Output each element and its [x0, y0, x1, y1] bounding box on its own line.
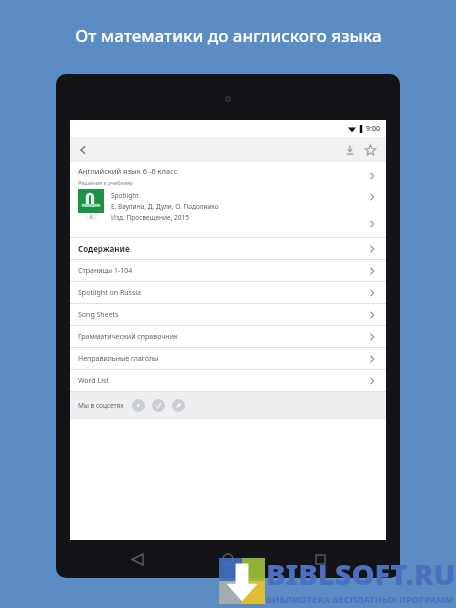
button[interactable]: Twitter — [172, 399, 185, 412]
staticText: BIBLSOFT.RU — [266, 554, 456, 593]
button[interactable]: Spotlight on Russia — [70, 282, 386, 303]
staticText: Song Sheets — [78, 310, 364, 320]
staticText: БИБЛИОТЕКА БЕСПЛАТНЫХ ПРОГРАММ — [266, 593, 454, 606]
button[interactable]: Грамматический справочник — [70, 326, 386, 347]
button[interactable]: 6 — [78, 189, 380, 232]
staticText: Изд. Просвещение, 2015 — [111, 213, 189, 222]
button[interactable]: Неправильные глаголы — [70, 348, 386, 369]
button[interactable]: VK — [152, 399, 165, 412]
staticText: Неправильные глаголы — [78, 354, 364, 364]
staticText: От математики до англиского языка — [75, 24, 382, 47]
staticText: Грамматический справочник — [78, 332, 364, 342]
button[interactable]: Back — [126, 548, 148, 570]
button[interactable]: Home — [217, 548, 239, 570]
button[interactable]: YouTube — [132, 399, 145, 412]
button[interactable]: Favorite — [360, 140, 380, 160]
staticText: Мы в соцсетях — [78, 401, 124, 410]
staticText: 9:00 — [366, 124, 380, 134]
staticText: Spotlight — [111, 191, 139, 200]
button[interactable]: Word List — [70, 370, 386, 391]
staticText: Содержание — [78, 243, 364, 254]
button[interactable]: Содержание — [70, 238, 386, 259]
button[interactable]: Back — [70, 137, 95, 162]
staticText: Страницы 1-104 — [78, 266, 364, 276]
staticText: Английский язык 6 -6 класс — [78, 166, 178, 176]
staticText: Решения к учебнику — [78, 179, 133, 186]
staticText: Spotlight on Russia — [78, 288, 364, 298]
button[interactable]: Song Sheets — [70, 304, 386, 325]
button[interactable]: Recents — [309, 548, 331, 570]
staticText: Е. Ваулина, Д. Дули, О. Подоляико — [111, 202, 219, 211]
button[interactable]: Download — [340, 140, 360, 160]
staticText: 6 — [90, 214, 93, 220]
staticText: Word List — [78, 376, 364, 386]
button[interactable]: Страницы 1-104 — [70, 260, 386, 281]
